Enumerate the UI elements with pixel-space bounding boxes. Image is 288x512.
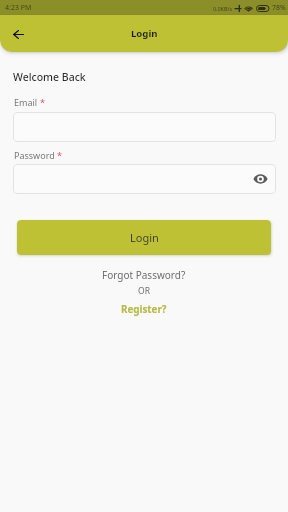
button[interactable]: Back — [6, 22, 30, 46]
staticText: Login — [130, 230, 159, 245]
staticText: Login — [131, 27, 158, 40]
staticText: Welcome Back — [13, 70, 86, 84]
staticText: Forgot Password? — [102, 268, 186, 282]
button[interactable]: Register? — [111, 301, 177, 318]
staticText: Password — [14, 149, 55, 161]
button[interactable]: Login — [17, 220, 271, 255]
button[interactable]: Show password — [13, 164, 276, 194]
staticText: Register? — [121, 303, 167, 316]
staticText: * — [57, 149, 62, 161]
button[interactable]: Show password — [252, 171, 268, 187]
staticText: 0.0KB/s — [213, 5, 233, 12]
staticText: 4:23 PM — [5, 3, 32, 13]
button[interactable]: Forgot Password? — [92, 266, 196, 284]
staticText: Email — [14, 96, 38, 108]
staticText: OR — [138, 285, 150, 297]
button[interactable] — [13, 112, 276, 142]
staticText: 78% — [272, 3, 286, 13]
staticText: * — [40, 96, 45, 108]
